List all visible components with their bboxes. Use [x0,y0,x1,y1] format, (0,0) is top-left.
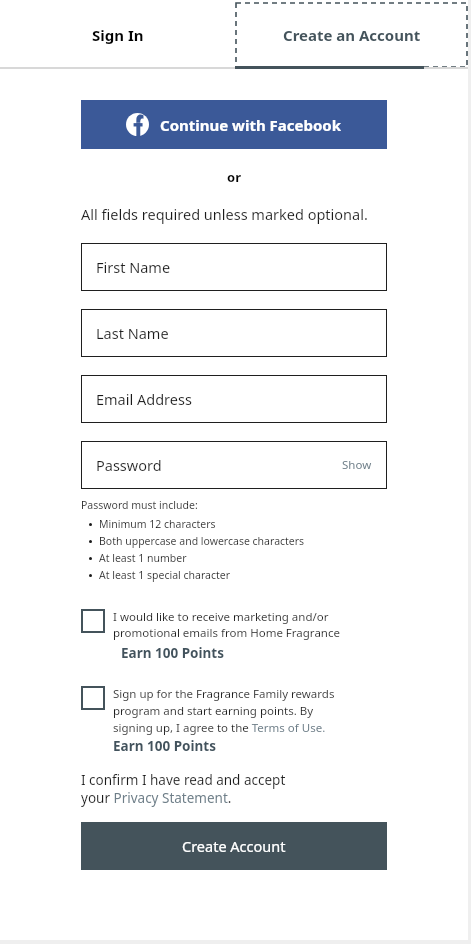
staticText: Continue with Facebook [160,115,342,135]
staticText: I would like to receive marketing and/or… [113,609,340,641]
staticText: At least 1 special character [99,568,231,582]
staticText: Password [96,455,342,475]
staticText: Password must include: [81,498,198,512]
button[interactable]: Create an Account [235,0,468,69]
staticText: Create an Account [283,25,421,45]
button[interactable]: Sign In [0,0,235,69]
button[interactable]: Password [81,441,387,489]
staticText: Email Address [96,389,372,409]
button[interactable]: Checkbox [81,686,387,755]
staticText: Create Account [182,836,286,856]
staticText: Sign up for the Fragrance Family rewards… [113,686,335,735]
staticText: Earn 100 Points [113,737,216,755]
staticText: I confirm I have read and accept your Pr… [81,771,286,807]
staticText: or [81,168,387,186]
staticText: Minimum 12 characters [99,517,216,531]
button[interactable]: Checkbox [81,609,105,633]
button[interactable]: Checkbox [81,686,105,710]
staticText: Both uppercase and lowercase characters [99,534,305,548]
button[interactable]: Last Name [81,309,387,357]
staticText: First Name [96,257,372,277]
staticText: Sign In [92,25,144,45]
staticText: Last Name [96,323,372,343]
button[interactable]: Create Account [81,822,387,870]
staticText: Earn 100 Points [121,644,224,662]
button[interactable]: First Name [81,243,387,291]
button[interactable]: Continue with Facebook [81,100,387,149]
staticText: All fields required unless marked option… [81,204,368,224]
button[interactable]: Show [342,457,372,473]
button[interactable]: Checkbox [81,609,387,662]
button[interactable]: Email Address [81,375,387,423]
staticText: At least 1 number [99,551,187,565]
